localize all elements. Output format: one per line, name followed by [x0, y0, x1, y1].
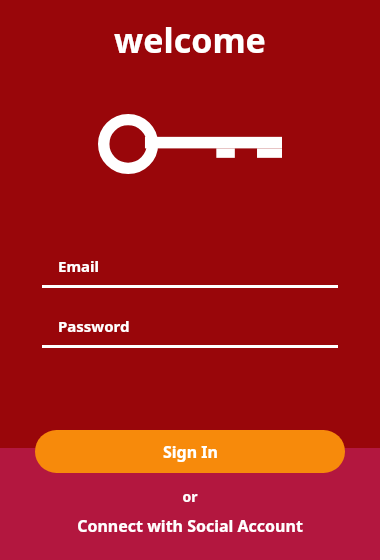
staticText: or [182, 487, 198, 506]
staticText: Connect with Social Account [77, 515, 303, 537]
button[interactable]: Connect with Social Account [69, 513, 311, 539]
staticText: welcome [0, 17, 380, 63]
button[interactable]: Password [42, 316, 338, 348]
other: Key [98, 109, 282, 179]
staticText: Email [58, 256, 99, 276]
button[interactable]: Email [42, 256, 338, 288]
staticText: Password [58, 316, 130, 336]
button[interactable]: Sign In [35, 430, 345, 473]
staticText: Sign In [163, 441, 218, 463]
